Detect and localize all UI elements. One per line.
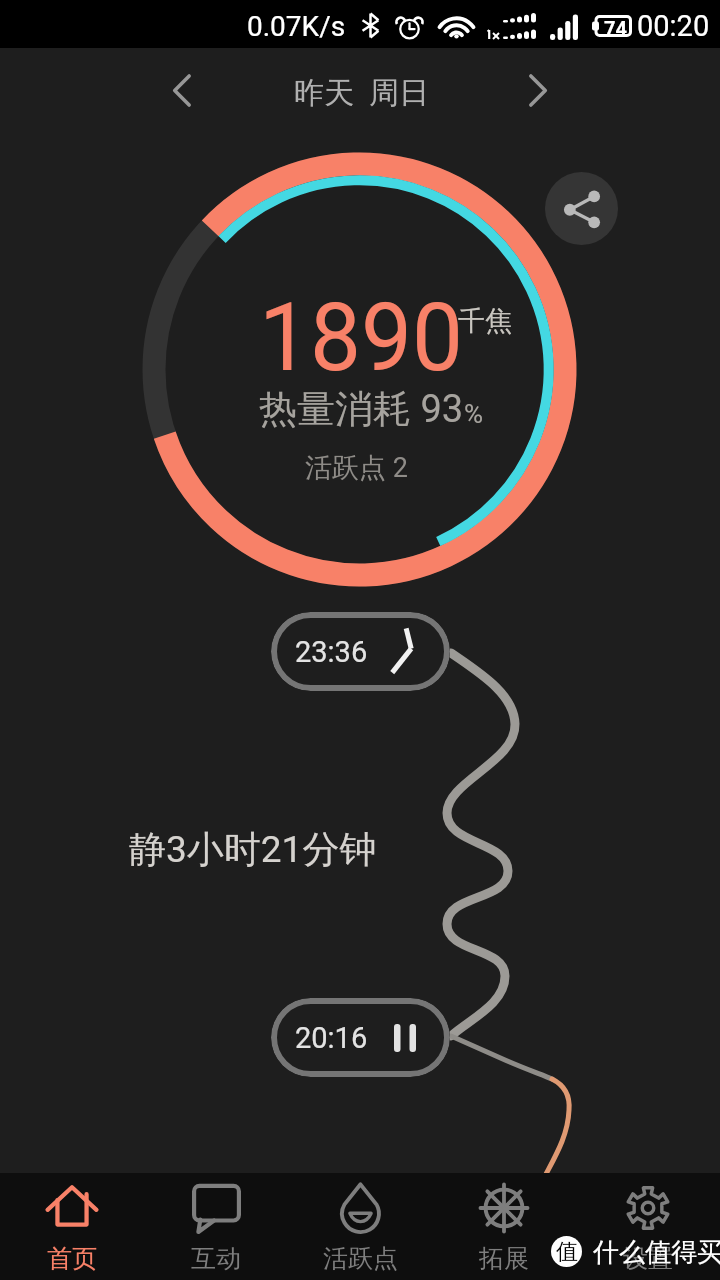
staticText: 拓展 xyxy=(479,1243,529,1274)
button[interactable]: 首页 xyxy=(0,1173,144,1280)
staticText: 热量消耗 93 xyxy=(259,385,464,433)
button[interactable]: Previous day xyxy=(146,55,216,125)
staticText: 值 xyxy=(556,1238,578,1266)
staticText: 活跃点 2 xyxy=(305,451,408,485)
staticText: 0.07K/s xyxy=(247,10,346,43)
staticText: 设置 xyxy=(623,1243,673,1274)
staticText: 千焦 xyxy=(458,304,512,338)
button[interactable]: 活跃点 xyxy=(288,1173,432,1280)
staticText: 互动 xyxy=(191,1243,241,1274)
button[interactable]: 互动 xyxy=(144,1173,288,1280)
staticText: 74 xyxy=(604,17,627,40)
button[interactable]: 拓展 xyxy=(432,1173,576,1280)
staticText: 23:36 xyxy=(295,635,368,669)
staticText: % xyxy=(464,399,484,429)
staticText: 20:16 xyxy=(295,1021,368,1055)
button[interactable]: 23:36 xyxy=(271,612,450,691)
staticText: 什么值得买 xyxy=(593,1236,720,1269)
staticText: 1890 xyxy=(259,283,464,393)
staticText: 活跃点 xyxy=(323,1243,398,1274)
button[interactable]: Share xyxy=(545,172,618,245)
button[interactable]: Next day xyxy=(503,55,573,125)
staticText: 静3小时21分钟 xyxy=(129,826,377,873)
staticText: 首页 xyxy=(47,1243,97,1274)
button[interactable]: 20:16 xyxy=(271,998,450,1077)
button[interactable]: 设置 xyxy=(576,1173,720,1280)
staticText: 昨天 周日 xyxy=(294,74,429,112)
staticText: 00:20 xyxy=(637,9,710,43)
